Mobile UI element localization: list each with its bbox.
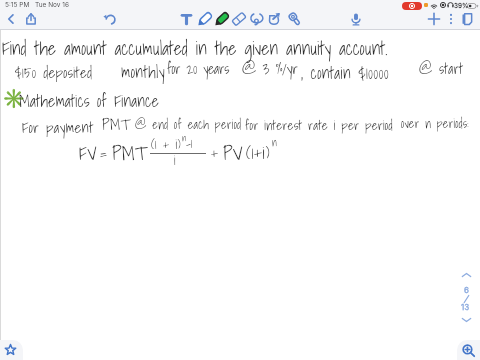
staticText: n (272, 134, 277, 150)
staticText: n (182, 130, 187, 144)
button[interactable]: Color picker (284, 12, 298, 26)
button[interactable]: Bookmark (0, 340, 23, 360)
staticText: (1 + i) (151, 134, 181, 155)
staticText: @ 3 %/yr (242, 56, 298, 80)
staticText: over n periods: (401, 114, 469, 133)
button[interactable]: Highlighter (214, 12, 229, 27)
staticText: monthly (121, 59, 165, 85)
button[interactable]: Back (4, 12, 18, 26)
staticText: (1+i) (246, 139, 271, 166)
button[interactable]: Previous page (460, 269, 473, 282)
button[interactable]: More options (445, 13, 457, 25)
staticText: PV (223, 138, 244, 169)
staticText: For payment (22, 115, 94, 139)
staticText: 5:15 PM (5, 1, 30, 9)
button[interactable]: Lasso (250, 12, 264, 26)
button[interactable]: Share (24, 12, 38, 26)
button[interactable]: Page browser (461, 12, 475, 26)
button[interactable]: Add page (427, 12, 441, 26)
staticText: , contain $10000 (301, 60, 389, 86)
staticText: PMT (112, 138, 146, 169)
button[interactable]: Text tool (180, 13, 193, 26)
staticText: Mathematics of Finance (19, 88, 159, 114)
button[interactable]: Undo (102, 12, 116, 26)
staticText: $150 deposited (15, 60, 93, 84)
staticText: 39% (454, 2, 469, 10)
button[interactable]: Pen (197, 12, 212, 27)
button[interactable]: Zoom in (457, 340, 480, 360)
staticText: Find the amount accumulated in the given… (2, 34, 388, 63)
staticText: ✳ (2, 87, 26, 109)
staticText: Tue Nov 16 (35, 1, 70, 9)
button[interactable]: Microphone (349, 12, 363, 26)
staticText: 6 (464, 285, 469, 295)
staticText: @ end of each period (135, 115, 242, 134)
staticText: PMT (102, 112, 130, 136)
button[interactable]: Move (267, 12, 281, 26)
staticText: -1 (186, 134, 193, 153)
button[interactable]: Eraser (232, 12, 246, 26)
staticText: @ start (419, 58, 464, 80)
staticText: 13 (461, 302, 470, 312)
staticText: + (211, 141, 219, 165)
staticText: i (174, 151, 176, 170)
button[interactable]: Next page (460, 313, 473, 326)
staticText: for 20 years (167, 58, 229, 80)
staticText: FV (79, 139, 98, 168)
staticText: for interest rate i per period (245, 115, 393, 136)
staticText: = (100, 140, 107, 166)
